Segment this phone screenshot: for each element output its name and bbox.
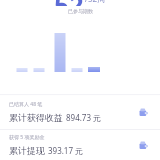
button[interactable]: 获得 5 项奖励金 [0,130,160,160]
staticText: 累计获得收益 [9,111,66,123]
button[interactable]: 查看累计提现 [135,137,151,153]
staticText: 894.73 元 [66,112,102,123]
staticText: 52 [54,0,84,6]
button[interactable]: 查看累计获得收益 [135,104,151,120]
staticText: 累计提现 [9,144,48,156]
staticText: 已参与期数 [68,8,93,14]
staticText: /52周 [85,0,106,4]
button[interactable]: 已结算人 48 笔 [0,95,160,129]
staticText: 获得 5 项奖励金 [9,134,45,141]
staticText: 已结算人 48 笔 [9,101,43,108]
staticText: 393.17 元 [48,145,84,156]
